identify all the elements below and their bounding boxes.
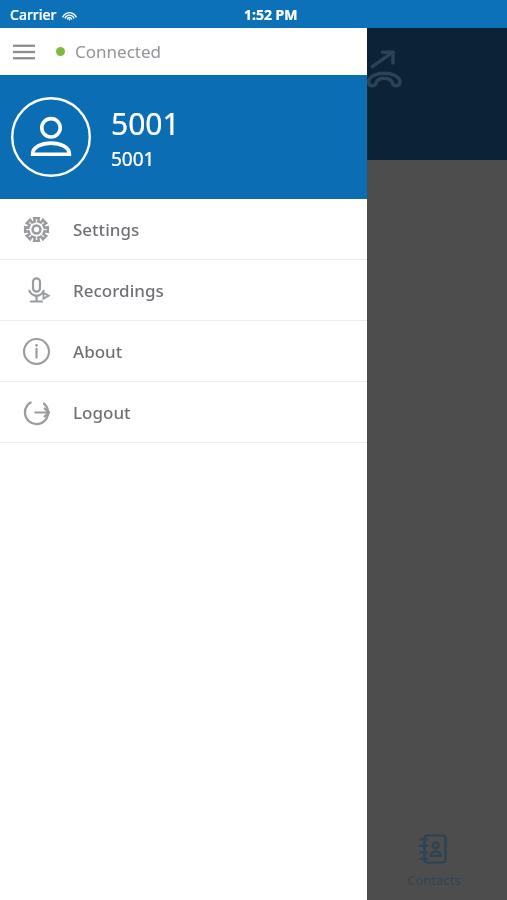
- staticText: 5001: [111, 146, 155, 172]
- button[interactable]: Recordings: [0, 260, 367, 320]
- button[interactable]: Open navigation menu: [0, 28, 48, 75]
- staticText: About: [73, 340, 123, 363]
- button[interactable]: Logout: [0, 382, 367, 442]
- staticText: Recordings: [73, 279, 164, 302]
- button[interactable]: Settings: [0, 199, 367, 259]
- staticText: Carrier: [10, 5, 57, 24]
- button[interactable]: About: [0, 321, 367, 381]
- button[interactable]: 5001: [0, 75, 367, 199]
- staticText: Contacts: [407, 871, 461, 889]
- button[interactable]: Contacts: [360, 818, 507, 900]
- staticText: Settings: [73, 218, 140, 241]
- staticText: 5001: [111, 103, 180, 144]
- staticText: Connected: [75, 40, 161, 63]
- staticText: Logout: [73, 401, 131, 424]
- staticText: 1:52 PM: [244, 5, 298, 24]
